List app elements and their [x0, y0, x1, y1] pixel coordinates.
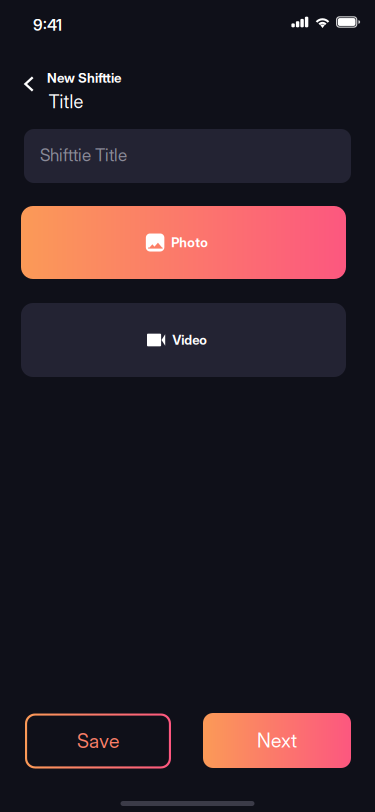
button[interactable]: Save [25, 713, 171, 768]
button[interactable]: Video [21, 303, 346, 377]
staticText: Next [257, 729, 297, 752]
staticText: 9:41 [33, 15, 62, 34]
button[interactable]: Back [14, 67, 44, 101]
staticText: Shifttie Title [40, 145, 127, 165]
staticText: Photo [171, 235, 208, 250]
button[interactable]: Next [203, 713, 351, 768]
staticText: Save [77, 729, 119, 753]
staticText: New Shifttie [47, 70, 121, 86]
staticText: Video [172, 332, 207, 348]
button[interactable]: Photo [21, 206, 346, 279]
staticText: Title [48, 90, 83, 112]
